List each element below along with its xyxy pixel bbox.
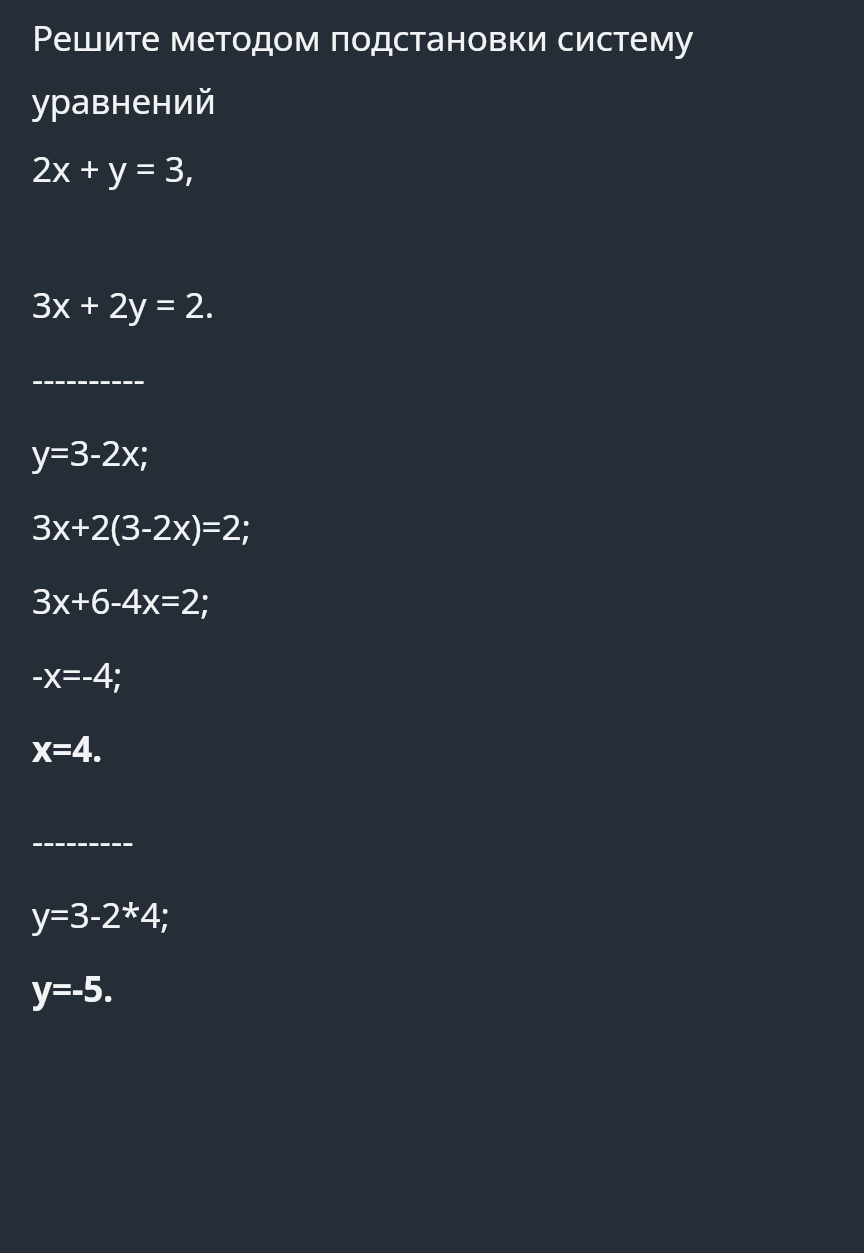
staticText: --------- [32, 817, 832, 865]
staticText: 3x + 2y = 2. [32, 281, 832, 329]
staticText: y=-5. [32, 965, 832, 1013]
staticText: x=4. [32, 725, 832, 773]
staticText: Решите методом подстановки систему уравн… [32, 14, 832, 125]
staticText: -x=-4; [32, 651, 832, 699]
staticText: y=3-2*4; [32, 891, 832, 939]
button[interactable]: Решите методом подстановки систему уравн… [32, 14, 832, 1229]
staticText: ---------- [32, 355, 832, 403]
staticText: 3x+6-4x=2; [32, 577, 832, 625]
staticText: y=3-2x; [32, 429, 832, 477]
staticText: 2x + y = 3, [32, 145, 832, 193]
staticText: 3x+2(3-2x)=2; [32, 503, 832, 551]
